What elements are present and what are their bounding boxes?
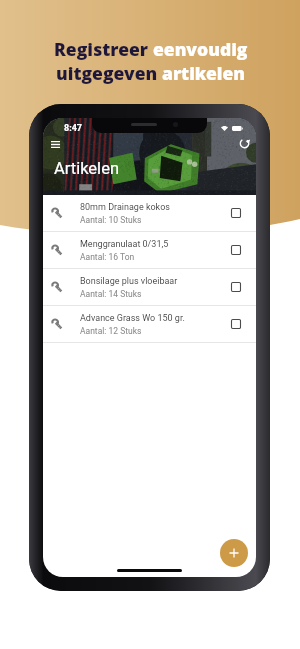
staticText: Aantal: 14 Stuks [80, 289, 142, 299]
staticText: Aantal: 10 Stuks [80, 215, 142, 225]
staticText: uitgegeven [56, 61, 162, 85]
button[interactable]: Bonsilage plus vloeibaar [43, 269, 256, 306]
button[interactable]: Add item [220, 539, 248, 567]
button[interactable]: Menggranulaat 0/31,5 [43, 232, 256, 269]
button[interactable]: 80mm Drainage kokos [43, 195, 256, 232]
staticText: eenvoudig [153, 37, 248, 61]
staticText: Menggranulaat 0/31,5 [80, 239, 169, 250]
staticText: Aantal: 12 Stuks [80, 326, 142, 336]
button[interactable]: Advance Grass Wo 150 gr. [43, 306, 256, 343]
staticText: Bonsilage plus vloeibaar [80, 276, 178, 287]
staticText: Artikelen [54, 159, 119, 178]
staticText: Aantal: 16 Ton [80, 252, 135, 262]
staticText: Registreer [54, 37, 153, 61]
button[interactable]: Open menu [44, 133, 66, 155]
button[interactable]: Refresh [233, 132, 255, 154]
staticText: artikelen [162, 61, 246, 85]
staticText: 8:47 [64, 123, 83, 134]
staticText: Advance Grass Wo 150 gr. [80, 313, 185, 324]
staticText: 80mm Drainage kokos [80, 202, 170, 213]
